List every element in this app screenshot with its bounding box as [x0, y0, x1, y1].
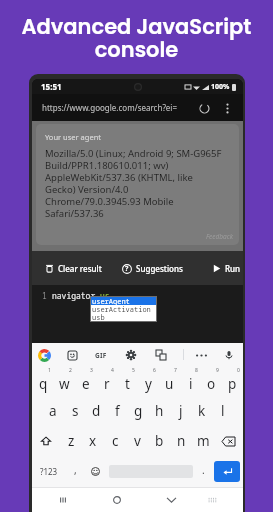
button[interactable]: 1 — [32, 366, 54, 396]
staticText: a — [49, 402, 57, 420]
button[interactable]: Voice input — [220, 346, 238, 364]
staticText: g — [134, 402, 143, 420]
button[interactable]: f — [107, 396, 128, 426]
staticText: 9 — [216, 367, 219, 374]
button[interactable]: Settings — [122, 346, 140, 364]
button[interactable]: n — [170, 426, 192, 456]
button[interactable]: h — [149, 396, 170, 426]
staticText: j — [179, 402, 183, 420]
staticText: https://www.google.com/search?ei= — [42, 102, 178, 113]
staticText: 3 — [90, 367, 93, 374]
button[interactable]: ?123 — [32, 456, 66, 487]
button[interactable]: Backspace — [214, 426, 243, 456]
staticText: v — [134, 432, 141, 450]
staticText: o — [207, 375, 216, 393]
staticText: l — [221, 402, 225, 420]
button[interactable]: 0 — [222, 366, 243, 396]
button[interactable]: Keyboard — [202, 490, 222, 510]
staticText: f — [115, 402, 120, 420]
staticText: x — [89, 432, 97, 450]
button[interactable]: More — [192, 346, 210, 364]
button[interactable]: v — [126, 426, 148, 456]
staticText: , — [74, 463, 77, 477]
staticText: z — [68, 432, 75, 450]
button[interactable]: . — [197, 456, 210, 487]
staticText: 4 — [111, 367, 114, 374]
button[interactable]: 5 — [117, 366, 138, 396]
button[interactable]: l — [212, 396, 233, 426]
button[interactable]: 2 — [54, 366, 75, 396]
button[interactable]: Run — [210, 263, 243, 274]
button[interactable]: , — [66, 456, 85, 487]
staticText: us — [100, 290, 110, 301]
button[interactable]: More options — [220, 101, 234, 115]
staticText: 7 — [174, 367, 177, 374]
button[interactable]: ? — [120, 263, 185, 274]
button[interactable]: 4 — [96, 366, 117, 396]
button[interactable]: b — [148, 426, 170, 456]
button[interactable]: Google — [35, 346, 53, 364]
staticText: Your user agent — [45, 132, 101, 142]
staticText: b — [155, 432, 164, 450]
button[interactable]: Home — [107, 490, 127, 510]
staticText: t — [125, 375, 130, 393]
button[interactable]: Enter — [214, 461, 240, 482]
button[interactable]: g — [128, 396, 149, 426]
button[interactable]: Emoji — [85, 456, 105, 487]
staticText: h — [155, 402, 164, 420]
staticText: ?123 — [40, 466, 58, 477]
staticText: userActivation — [92, 305, 151, 313]
staticText: w — [59, 375, 70, 393]
staticText: y — [145, 375, 152, 393]
button[interactable]: z — [60, 426, 82, 456]
staticText: i — [189, 375, 193, 393]
staticText: ? — [125, 264, 129, 274]
staticText: p — [228, 375, 237, 393]
staticText: Run — [225, 263, 241, 274]
button[interactable]: 6 — [138, 366, 159, 396]
staticText: . — [202, 463, 205, 477]
button[interactable]: userAgent — [91, 297, 156, 305]
staticText: 100% — [211, 82, 230, 92]
button[interactable]: c — [104, 426, 126, 456]
staticText: d — [92, 402, 101, 420]
button[interactable]: GIF — [92, 346, 110, 364]
button[interactable]: 3 — [75, 366, 96, 396]
button[interactable]: Reload — [197, 101, 211, 115]
staticText: m — [197, 432, 210, 450]
staticText: e — [82, 375, 90, 393]
button[interactable]: s — [64, 396, 86, 426]
staticText: GIF — [95, 351, 107, 360]
button[interactable]: Stickers — [63, 346, 81, 364]
button[interactable]: Clear result — [43, 263, 104, 274]
button[interactable]: 8 — [180, 366, 201, 396]
staticText: 15:51 — [41, 81, 62, 92]
staticText: 1 — [42, 290, 47, 301]
button[interactable]: k — [191, 396, 212, 426]
button[interactable]: usb — [91, 313, 156, 321]
button[interactable]: x — [82, 426, 104, 456]
button[interactable]: 7 — [159, 366, 180, 396]
button[interactable]: 9 — [201, 366, 222, 396]
button[interactable]: Shift — [32, 426, 60, 456]
button[interactable]: j — [170, 396, 191, 426]
staticText: q — [39, 375, 48, 393]
staticText: r — [104, 375, 110, 393]
staticText: Advanced JavaScript console — [0, 12, 273, 64]
button[interactable]: Translate — [152, 346, 170, 364]
staticText: 8 — [195, 367, 198, 374]
button[interactable]: Recents — [53, 490, 73, 510]
staticText: usb — [92, 313, 105, 321]
staticText: Feedback — [206, 232, 233, 241]
staticText: 0 — [237, 367, 240, 374]
staticText: 6 — [153, 367, 156, 374]
button[interactable]: d — [86, 396, 107, 426]
button[interactable]: a — [42, 396, 64, 426]
button[interactable]: Back — [161, 490, 181, 510]
staticText: navigator. — [52, 290, 100, 301]
button[interactable]: m — [192, 426, 214, 456]
button[interactable]: userActivation — [91, 305, 156, 313]
staticText: userAgent — [92, 297, 130, 305]
staticText: 2 — [69, 367, 72, 374]
